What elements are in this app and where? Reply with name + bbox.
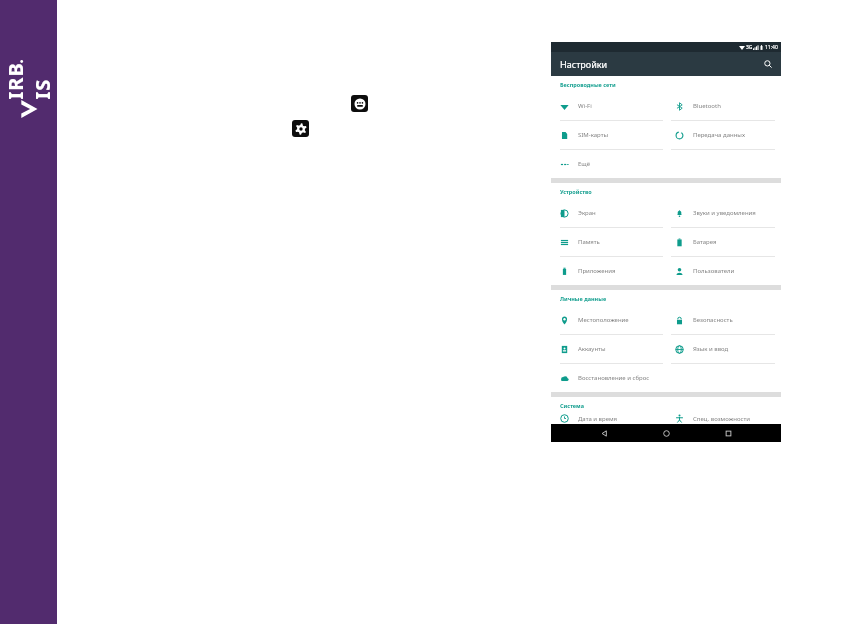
button[interactable]: Восстановление и сброс xyxy=(551,364,666,392)
staticText: Аккаунты xyxy=(578,345,606,353)
staticText: Восстановление и сброс xyxy=(578,374,650,382)
staticText: IRBIS xyxy=(1,61,55,99)
button[interactable]: Дата и время xyxy=(551,413,666,424)
button[interactable]: Экран xyxy=(551,199,666,227)
staticText: Устройство xyxy=(560,188,592,195)
staticText: Wi-Fi xyxy=(578,102,592,110)
button[interactable]: Recents xyxy=(719,424,737,442)
staticText: Память xyxy=(578,238,600,246)
button[interactable]: Home xyxy=(657,424,675,442)
staticText: 3G xyxy=(746,44,753,51)
button[interactable]: Местоположение xyxy=(551,306,666,334)
staticText: Bluetooth xyxy=(693,102,721,110)
staticText: Пользователи xyxy=(693,267,735,275)
staticText: Ещё xyxy=(578,160,591,168)
button[interactable]: Передача данных xyxy=(666,121,781,149)
staticText: 11:40 xyxy=(765,44,778,51)
button[interactable]: Память xyxy=(551,228,666,256)
button[interactable]: Аккаунты xyxy=(551,335,666,363)
button[interactable]: Back xyxy=(595,424,613,442)
button[interactable]: Bluetooth xyxy=(666,92,781,120)
button[interactable]: Спец. возможности xyxy=(666,413,781,424)
button[interactable]: Язык и ввод xyxy=(666,335,781,363)
button[interactable]: Звуки и уведомления xyxy=(666,199,781,227)
staticText: Спец. возможности xyxy=(693,415,750,423)
staticText: Безопасность xyxy=(693,316,733,324)
button[interactable]: Приложения xyxy=(551,257,666,285)
button[interactable]: SIM-карты xyxy=(551,121,666,149)
staticText: Личные данные xyxy=(560,295,607,302)
button[interactable]: Settings xyxy=(292,120,309,137)
button[interactable]: Пользователи xyxy=(666,257,781,285)
staticText: Батарея xyxy=(693,238,717,246)
button[interactable]: All apps xyxy=(351,95,368,112)
staticText: SIM-карты xyxy=(578,131,609,139)
staticText: Местоположение xyxy=(578,316,629,324)
staticText: Язык и ввод xyxy=(693,345,729,353)
staticText: Беспроводные сети xyxy=(560,81,616,88)
staticText: Дата и время xyxy=(578,415,618,423)
button[interactable]: Безопасность xyxy=(666,306,781,334)
button[interactable]: Wi-Fi xyxy=(551,92,666,120)
staticText: Передача данных xyxy=(693,131,745,139)
button[interactable]: Батарея xyxy=(666,228,781,256)
staticText: Приложения xyxy=(578,267,616,275)
staticText: Настройки xyxy=(560,58,608,70)
button[interactable]: Search xyxy=(760,56,776,72)
button[interactable]: Ещё xyxy=(551,150,666,178)
staticText: Экран xyxy=(578,209,596,217)
staticText: Система xyxy=(560,402,584,409)
staticText: Звуки и уведомления xyxy=(693,209,756,217)
